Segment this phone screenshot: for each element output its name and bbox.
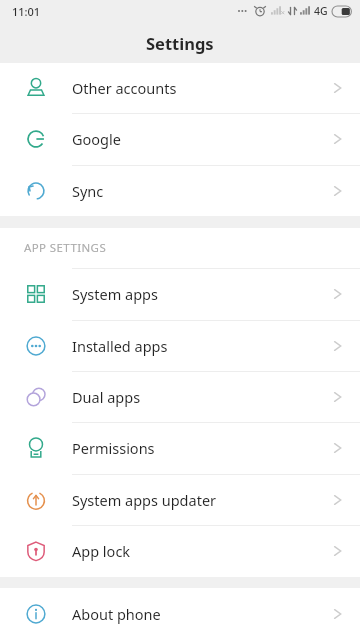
staticText: Google <box>72 129 121 149</box>
button[interactable]: Sync <box>0 165 360 216</box>
staticText: Installed apps <box>72 336 168 356</box>
button[interactable]: Google <box>0 113 360 165</box>
staticText: About phone <box>72 604 161 624</box>
staticText: System apps updater <box>72 490 217 510</box>
button[interactable]: Dual apps <box>0 371 360 422</box>
staticText: Dual apps <box>72 387 141 407</box>
staticText: Permissions <box>72 438 155 458</box>
staticText: 4G <box>314 4 328 18</box>
button[interactable]: Permissions <box>0 422 360 474</box>
staticText: System apps <box>72 284 158 304</box>
staticText: 11:01 <box>12 4 41 19</box>
button[interactable]: System apps <box>0 268 360 320</box>
button[interactable]: App lock <box>0 525 360 577</box>
staticText: Sync <box>72 181 104 201</box>
staticText: Other accounts <box>72 78 177 98</box>
button[interactable]: System apps updater <box>0 474 360 525</box>
staticText: Settings <box>146 32 214 54</box>
staticText: App lock <box>72 541 131 561</box>
button[interactable]: Other accounts <box>0 63 360 113</box>
button[interactable]: Installed apps <box>0 320 360 371</box>
button[interactable]: About phone <box>0 588 360 640</box>
staticText: APP SETTINGS <box>24 240 107 256</box>
